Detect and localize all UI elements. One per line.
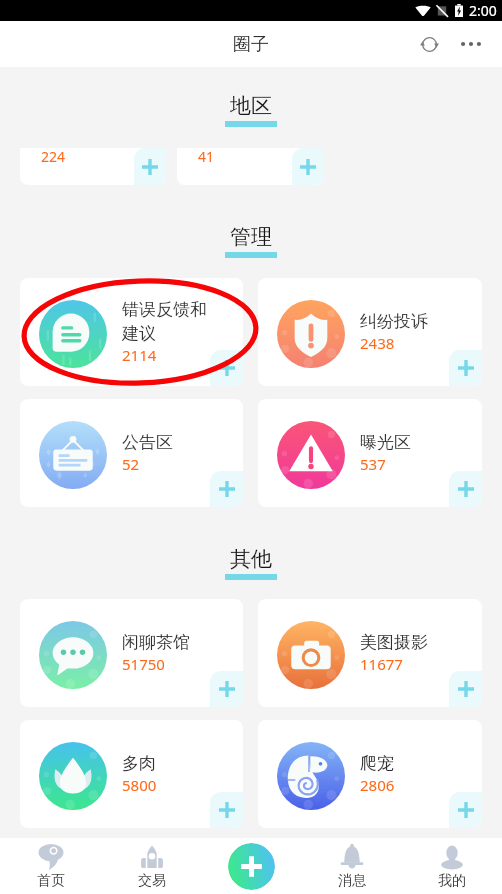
staticText: 圈子 xyxy=(233,33,269,56)
button[interactable]: Join xyxy=(449,471,482,507)
staticText: 537 xyxy=(360,454,386,474)
staticText: 首页 xyxy=(37,872,65,890)
button[interactable]: 错误反馈和建议 xyxy=(20,278,243,386)
button[interactable]: Join xyxy=(210,671,243,707)
button[interactable]: 首页 xyxy=(0,838,101,894)
button[interactable]: Join xyxy=(449,671,482,707)
button[interactable]: 曝光区 xyxy=(258,399,482,507)
staticText: 2114 xyxy=(122,345,157,365)
button[interactable]: 爬宠 xyxy=(258,720,482,828)
button[interactable]: Join xyxy=(134,148,166,185)
button[interactable]: Join xyxy=(210,350,243,386)
button[interactable]: Join xyxy=(449,350,482,386)
staticText: 51750 xyxy=(122,654,165,674)
staticText: 其他 xyxy=(230,546,272,572)
staticText: 管理 xyxy=(230,224,272,250)
button[interactable]: Join xyxy=(210,792,243,828)
staticText: 2806 xyxy=(360,775,395,795)
staticText: 2:00 xyxy=(469,1,497,20)
staticText: 5800 xyxy=(122,775,157,795)
staticText: 多肉 xyxy=(122,753,156,774)
staticText: 美图摄影 xyxy=(360,632,428,653)
staticText: 2438 xyxy=(360,333,395,353)
staticText: 地区 xyxy=(230,93,272,119)
button[interactable]: 多肉 xyxy=(20,720,243,828)
staticText: 消息 xyxy=(338,872,366,890)
staticText: 11677 xyxy=(360,654,403,674)
staticText: 交易 xyxy=(138,872,166,890)
button[interactable]: Join xyxy=(210,471,243,507)
staticText: 公告区 xyxy=(122,432,173,453)
button[interactable]: 美图摄影 xyxy=(258,599,482,707)
staticText: 我的 xyxy=(438,872,466,890)
staticText: 224 xyxy=(41,148,66,166)
button[interactable]: 闲聊茶馆 xyxy=(20,599,243,707)
button[interactable]: 纠纷投诉 xyxy=(258,278,482,386)
button[interactable]: Add xyxy=(228,843,275,890)
button[interactable]: Refresh xyxy=(408,23,450,65)
staticText: 爬宠 xyxy=(360,753,394,774)
button[interactable]: 我的 xyxy=(402,838,502,894)
button[interactable]: 消息 xyxy=(302,838,402,894)
button[interactable]: 交易 xyxy=(101,838,202,894)
staticText: 41 xyxy=(198,148,215,166)
button[interactable]: Join xyxy=(449,792,482,828)
button[interactable]: 41 xyxy=(177,148,324,185)
button[interactable]: Join xyxy=(292,148,324,185)
staticText: 闲聊茶馆 xyxy=(122,632,190,653)
staticText: 52 xyxy=(122,454,140,474)
staticText: 纠纷投诉 xyxy=(360,311,428,332)
staticText: 错误反馈和建议 xyxy=(122,299,212,344)
button[interactable]: 公告区 xyxy=(20,399,243,507)
button[interactable]: More options xyxy=(450,23,492,65)
button[interactable]: 224 xyxy=(20,148,166,185)
staticText: 曝光区 xyxy=(360,432,411,453)
